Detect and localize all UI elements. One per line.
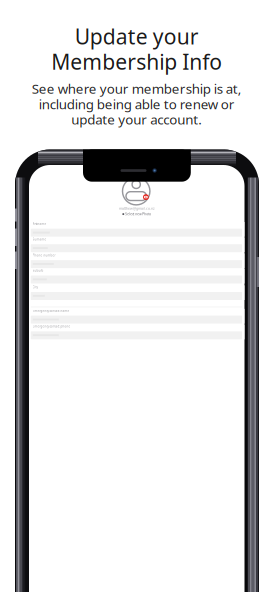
staticText: Surname — [33, 237, 47, 241]
staticText: including being able to renew or — [38, 95, 234, 113]
button[interactable]: Emergency contact name — [29, 309, 244, 324]
button[interactable]: Suburb — [29, 269, 244, 283]
button[interactable]: Select new Photo — [29, 213, 244, 216]
staticText: Select new Photo — [125, 212, 151, 216]
staticText: See where your membership is at, — [31, 80, 241, 98]
staticText: Emergency contact name — [33, 309, 70, 313]
staticText: matthew@gmail.co.nz — [119, 206, 155, 211]
button[interactable]: City — [29, 285, 244, 300]
staticText: Firstname — [33, 222, 47, 226]
staticText: City — [33, 285, 38, 289]
button[interactable]: Emergency contact phone — [29, 325, 244, 339]
staticText: Phone number — [33, 253, 56, 257]
staticText: Membership Info — [51, 47, 222, 76]
staticText: Suburb — [33, 269, 44, 273]
button[interactable]: Phone number — [29, 253, 244, 268]
staticText: Emergency contact phone — [33, 325, 71, 328]
staticText: Update your — [74, 22, 198, 51]
button[interactable]: Firstname — [29, 222, 244, 237]
staticText: update your account. — [71, 110, 202, 128]
button[interactable]: Surname — [29, 237, 244, 252]
